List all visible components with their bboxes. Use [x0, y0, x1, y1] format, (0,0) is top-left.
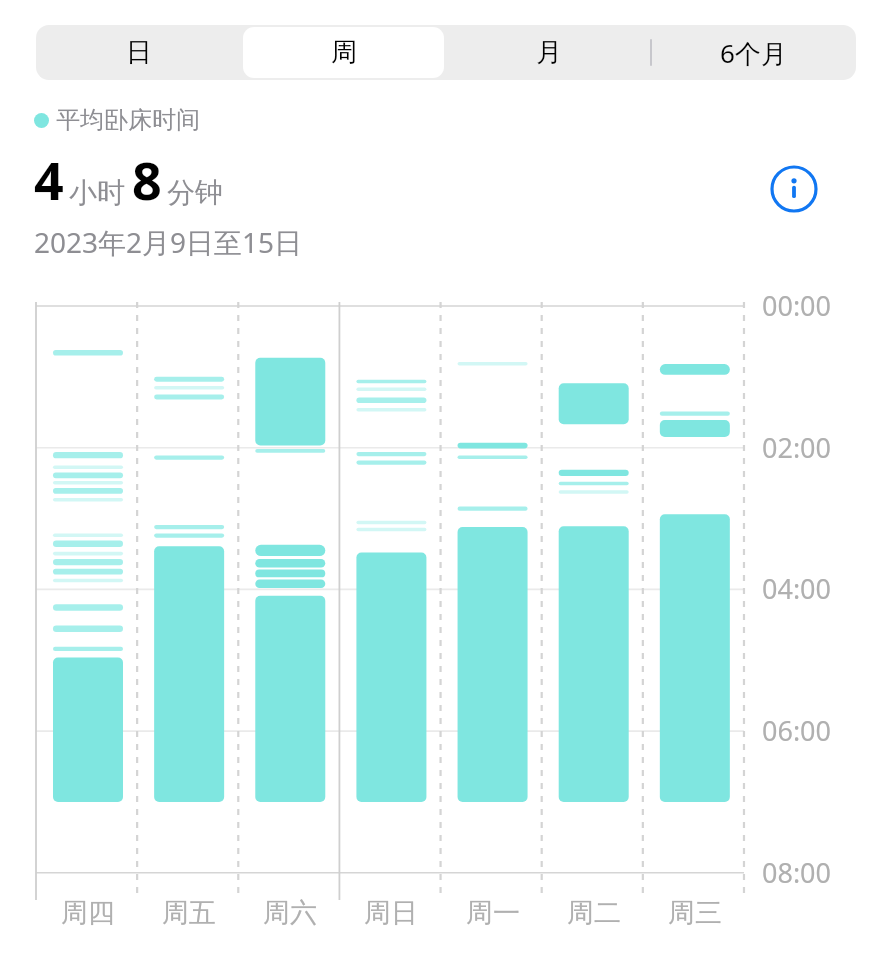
- staticText: 00:00: [762, 287, 832, 324]
- staticText: 分钟: [167, 175, 223, 210]
- button[interactable]: 月: [448, 27, 649, 78]
- staticText: 小时: [69, 175, 125, 210]
- button[interactable]: 日: [38, 27, 239, 78]
- staticText: 2023年2月9日至15日: [34, 223, 303, 261]
- staticText: 周六: [263, 896, 317, 930]
- staticText: 日: [126, 36, 152, 69]
- button[interactable]: 周: [243, 27, 444, 78]
- staticText: 周三: [668, 896, 722, 930]
- button[interactable]: 更多信息: [768, 163, 820, 215]
- staticText: 6个月: [720, 35, 787, 71]
- staticText: 04:00: [762, 570, 832, 607]
- staticText: 08:00: [762, 854, 832, 891]
- staticText: 4: [34, 144, 64, 215]
- staticText: 周五: [162, 896, 216, 930]
- staticText: 平均卧床时间: [56, 105, 200, 135]
- staticText: 06:00: [762, 712, 832, 749]
- staticText: 周一: [466, 896, 520, 930]
- staticText: 周: [331, 36, 357, 69]
- staticText: 8: [132, 144, 162, 215]
- staticText: 02:00: [762, 429, 832, 466]
- staticText: 月: [536, 36, 562, 69]
- staticText: 周二: [567, 896, 621, 930]
- staticText: 周四: [61, 896, 115, 930]
- button[interactable]: 6个月: [653, 27, 854, 78]
- staticText: 周日: [364, 896, 418, 930]
